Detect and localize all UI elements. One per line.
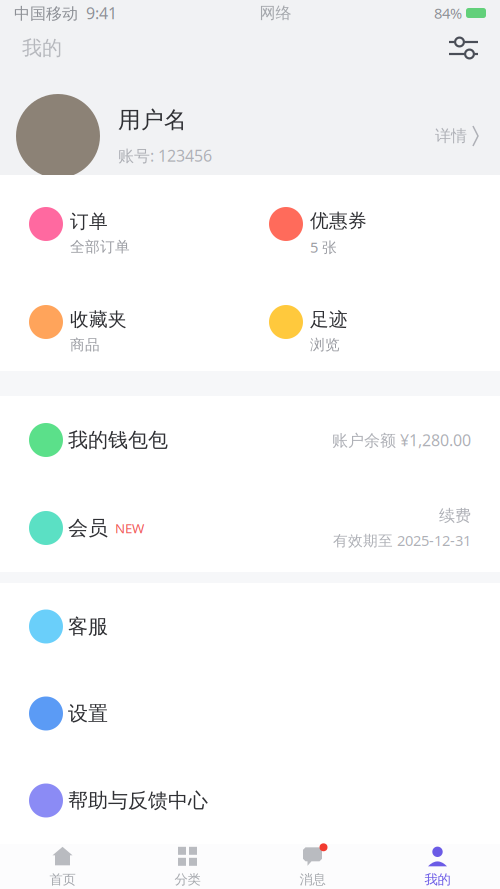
staticText: 我的钱包包 [68,428,168,452]
staticText: 中国移动 9:41 [14,2,117,24]
button[interactable]: 会员 [0,484,500,572]
staticText: 会员 [68,516,108,540]
staticText: 账户余额 ¥1,280.00 [332,429,471,451]
button[interactable]: 分类 [125,844,250,889]
button[interactable]: 消息 [250,844,375,889]
staticText: 有效期至 2025-12-31 [333,531,471,550]
staticText: 详情 [435,126,467,146]
button[interactable]: 设置 [0,670,500,757]
staticText: 浏览 [310,336,340,354]
staticText: 客服 [68,614,108,639]
staticText: 收藏夹 [70,308,127,331]
staticText: 订单 [70,210,108,233]
staticText: 商品 [70,336,100,354]
button[interactable]: 订单 [0,175,240,273]
staticText: 我的 [424,871,450,888]
button[interactable]: Settings [445,32,482,63]
staticText: 首页 [49,871,75,888]
staticText: NEW [115,519,144,537]
staticText: 足迹 [310,308,348,331]
button[interactable]: 我的钱包包 [0,396,500,484]
staticText: 账号: 123456 [118,145,212,166]
button[interactable]: 帮助与反馈中心 [0,757,500,844]
staticText: 全部订单 [70,238,130,256]
staticText: 续费 [439,506,471,526]
staticText: 网络 [259,3,291,23]
button[interactable]: 我的 [375,844,500,889]
staticText: 用户名 [118,106,187,134]
button[interactable]: 用户名 [0,70,500,175]
button[interactable]: 优惠券 [240,175,500,273]
staticText: 设置 [68,701,108,726]
staticText: 分类 [174,871,200,888]
staticText: 优惠券 [310,209,367,232]
staticText: 84% [434,3,462,23]
staticText: 5 张 [310,237,337,257]
staticText: 消息 [299,871,325,888]
button[interactable]: 首页 [0,844,125,889]
staticText: 我的 [22,36,62,60]
staticText: 帮助与反馈中心 [68,788,208,813]
button[interactable]: 客服 [0,583,500,670]
button[interactable]: 收藏夹 [0,273,240,371]
button[interactable]: 足迹 [240,273,500,371]
